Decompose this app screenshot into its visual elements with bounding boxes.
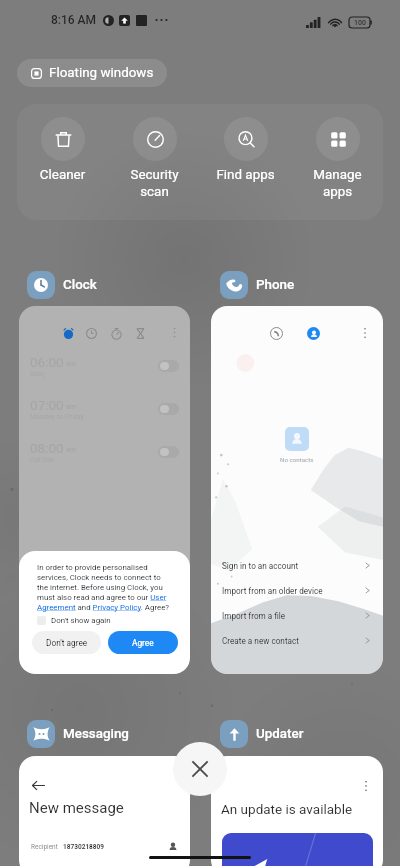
button[interactable]: Dialer xyxy=(270,327,283,340)
staticText: Clock xyxy=(63,277,97,293)
button[interactable]: Stopwatch xyxy=(111,328,122,339)
button[interactable]: Toggle alarm xyxy=(158,360,179,372)
staticText: Messaging xyxy=(63,726,129,742)
staticText: Import from an older device xyxy=(222,586,323,596)
staticText: Phone xyxy=(256,277,295,293)
button[interactable]: Close all xyxy=(173,742,227,796)
staticText: am xyxy=(66,360,76,368)
button[interactable]: Updater xyxy=(220,720,304,748)
button[interactable]: Alarm xyxy=(63,328,74,339)
staticText: Monday to Friday xyxy=(30,413,84,421)
staticText: 07:00 xyxy=(30,397,64,413)
button[interactable]: Manage apps xyxy=(292,117,383,200)
button[interactable]: Security scan xyxy=(109,117,200,200)
button[interactable]: More options xyxy=(211,756,383,866)
button[interactable]: More options xyxy=(169,327,180,338)
staticText: am xyxy=(66,446,76,454)
button[interactable]: Don't show again xyxy=(37,616,111,625)
button[interactable]: Back xyxy=(19,756,190,866)
staticText: 100 xyxy=(354,19,366,27)
button[interactable]: Back xyxy=(31,778,46,793)
staticText: Agree xyxy=(132,638,154,648)
button[interactable]: Don't agree xyxy=(32,631,101,654)
button[interactable]: Agree xyxy=(108,631,178,654)
button[interactable]: Dialer xyxy=(211,306,383,674)
button[interactable]: Clock xyxy=(27,271,97,299)
button[interactable]: Import from an older device xyxy=(211,578,383,603)
button[interactable]: Messaging xyxy=(27,720,129,748)
button[interactable]: Phone xyxy=(220,271,295,299)
staticText: In order to provide personalised service… xyxy=(37,563,171,612)
button[interactable]: 08:00 xyxy=(30,440,179,464)
staticText: am xyxy=(66,403,76,411)
staticText: 08:00 xyxy=(30,440,64,456)
staticText: Create a new contact xyxy=(222,636,299,646)
staticText: Import from a file xyxy=(222,611,286,621)
button[interactable]: Alarm xyxy=(19,306,190,674)
button[interactable]: Timer xyxy=(135,328,146,339)
button[interactable]: Toggle alarm xyxy=(158,446,179,458)
staticText: Don't show again xyxy=(51,616,111,625)
staticText: 8:16 AM xyxy=(51,13,97,27)
button[interactable]: Sign in to an account xyxy=(211,553,383,578)
button[interactable]: 07:00 xyxy=(30,397,179,421)
staticText: Cleaner xyxy=(17,167,108,183)
staticText: No contacts xyxy=(280,456,314,463)
button[interactable]: Create a new contact xyxy=(211,628,383,653)
staticText: Sign in to an account xyxy=(222,561,299,571)
button[interactable]: 06:00 xyxy=(30,354,179,378)
staticText: Recipient xyxy=(31,843,58,851)
button[interactable]: Contacts xyxy=(307,327,320,340)
button[interactable]: Toggle alarm xyxy=(158,403,179,415)
button[interactable]: Cleaner xyxy=(17,117,108,183)
button[interactable]: More options xyxy=(360,780,372,792)
button[interactable]: Import from a file xyxy=(211,603,383,628)
staticText: Don't agree xyxy=(46,638,88,648)
staticText: 18730218809 xyxy=(63,843,105,851)
staticText: Find apps xyxy=(200,167,291,183)
staticText: Manage apps xyxy=(292,167,383,200)
button[interactable]: Clock xyxy=(86,328,97,339)
button[interactable]: Floating windows xyxy=(17,59,167,87)
staticText: Daily xyxy=(30,370,46,378)
staticText: Floating windows xyxy=(49,65,154,81)
button[interactable]: Find apps xyxy=(200,117,291,183)
staticText: An update is available xyxy=(221,801,353,817)
button[interactable]: More options xyxy=(359,327,371,339)
staticText: Security scan xyxy=(109,167,200,200)
staticText: Updater xyxy=(256,726,304,742)
staticText: 06:00 xyxy=(30,354,64,370)
staticText: New message xyxy=(29,799,124,817)
